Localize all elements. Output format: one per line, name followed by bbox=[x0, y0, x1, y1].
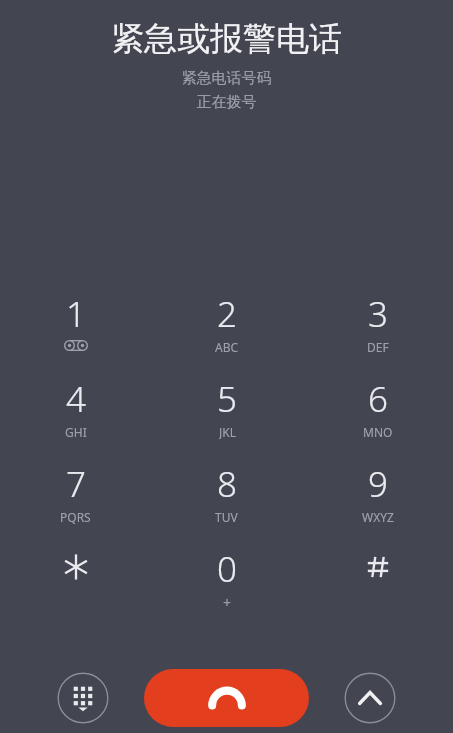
staticText: 8 bbox=[217, 460, 237, 508]
staticText: 3 bbox=[368, 290, 388, 338]
staticText: 紧急电话号码 bbox=[0, 69, 453, 88]
staticText: MNO bbox=[363, 424, 393, 439]
button[interactable]: Dialpad bbox=[57, 672, 109, 724]
button[interactable]: 8 bbox=[151, 460, 302, 524]
button[interactable]: Expand bbox=[344, 672, 396, 724]
staticText: 紧急或报警电话 bbox=[0, 18, 453, 60]
button[interactable] bbox=[302, 545, 453, 609]
button[interactable]: 1 bbox=[0, 290, 151, 354]
button[interactable]: 7 bbox=[0, 460, 151, 524]
staticText: 9 bbox=[368, 460, 388, 508]
staticText: WXYZ bbox=[362, 509, 394, 524]
staticText: + bbox=[223, 593, 232, 609]
staticText: 1 bbox=[66, 290, 86, 338]
staticText: 0 bbox=[217, 545, 237, 593]
staticText: 7 bbox=[66, 460, 86, 508]
button[interactable]: 5 bbox=[151, 375, 302, 439]
button[interactable]: 4 bbox=[0, 375, 151, 439]
button[interactable]: 0 bbox=[151, 545, 302, 609]
staticText: ABC bbox=[215, 339, 239, 354]
staticText: 5 bbox=[217, 375, 237, 423]
staticText: 2 bbox=[217, 290, 237, 338]
button[interactable]: 6 bbox=[302, 375, 453, 439]
staticText: JKL bbox=[219, 424, 236, 439]
button[interactable]: End call bbox=[144, 669, 309, 727]
staticText: PQRS bbox=[60, 509, 91, 524]
button[interactable]: 2 bbox=[151, 290, 302, 354]
staticText: GHI bbox=[65, 424, 87, 439]
button[interactable]: 9 bbox=[302, 460, 453, 524]
button[interactable]: 3 bbox=[302, 290, 453, 354]
staticText: 6 bbox=[368, 375, 388, 423]
staticText: TUV bbox=[215, 509, 238, 524]
staticText: 4 bbox=[66, 375, 86, 423]
staticText: DEF bbox=[367, 339, 389, 354]
staticText: 正在拨号 bbox=[0, 93, 453, 112]
button[interactable] bbox=[0, 545, 151, 609]
